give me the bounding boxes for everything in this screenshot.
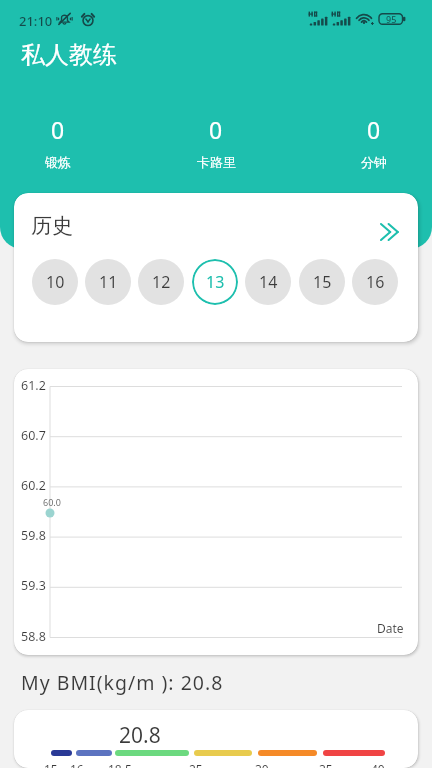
- staticText: 60.2: [21, 477, 46, 494]
- staticText: 15: [44, 761, 58, 768]
- staticText: 20.8: [119, 721, 161, 750]
- staticText: 35: [319, 761, 333, 768]
- staticText: 10: [46, 271, 65, 293]
- staticText: 16: [366, 271, 385, 293]
- staticText: 0: [51, 114, 65, 145]
- staticText: 0: [209, 114, 223, 145]
- button[interactable]: 10: [32, 259, 78, 305]
- staticText: 14: [259, 271, 278, 293]
- staticText: 60.0: [43, 496, 61, 508]
- staticText: 卡路里: [197, 154, 236, 170]
- button[interactable]: 14: [245, 259, 291, 305]
- staticText: 锻炼: [45, 154, 71, 170]
- staticText: 61.2: [21, 377, 46, 394]
- button[interactable]: 12: [138, 259, 184, 305]
- staticText: 私人教练: [21, 40, 117, 70]
- staticText: 59.3: [21, 577, 46, 594]
- staticText: 13: [206, 271, 225, 293]
- staticText: 60.7: [21, 427, 46, 444]
- staticText: 16: [70, 761, 84, 768]
- staticText: 58.8: [21, 628, 46, 645]
- button[interactable]: 15: [299, 259, 345, 305]
- staticText: 95: [386, 13, 397, 25]
- staticText: 0: [367, 114, 381, 145]
- staticText: My BMI(kg/m ): 20.8: [21, 669, 224, 696]
- staticText: 12: [152, 271, 171, 293]
- staticText: 59.8: [21, 527, 46, 544]
- staticText: 15: [313, 271, 332, 293]
- button[interactable]: 13: [192, 259, 238, 305]
- staticText: 25: [189, 761, 203, 768]
- button[interactable]: 11: [85, 259, 131, 305]
- staticText: 18.5: [108, 761, 132, 768]
- button[interactable]: 16: [352, 259, 398, 305]
- staticText: 历史: [31, 213, 73, 239]
- staticText: 30: [255, 761, 269, 768]
- button[interactable]: Show all history: [369, 212, 409, 252]
- staticText: 分钟: [361, 154, 387, 170]
- staticText: Date: [377, 620, 404, 636]
- staticText: 40: [371, 761, 385, 768]
- staticText: 11: [99, 271, 118, 293]
- staticText: 21:10: [19, 12, 53, 30]
